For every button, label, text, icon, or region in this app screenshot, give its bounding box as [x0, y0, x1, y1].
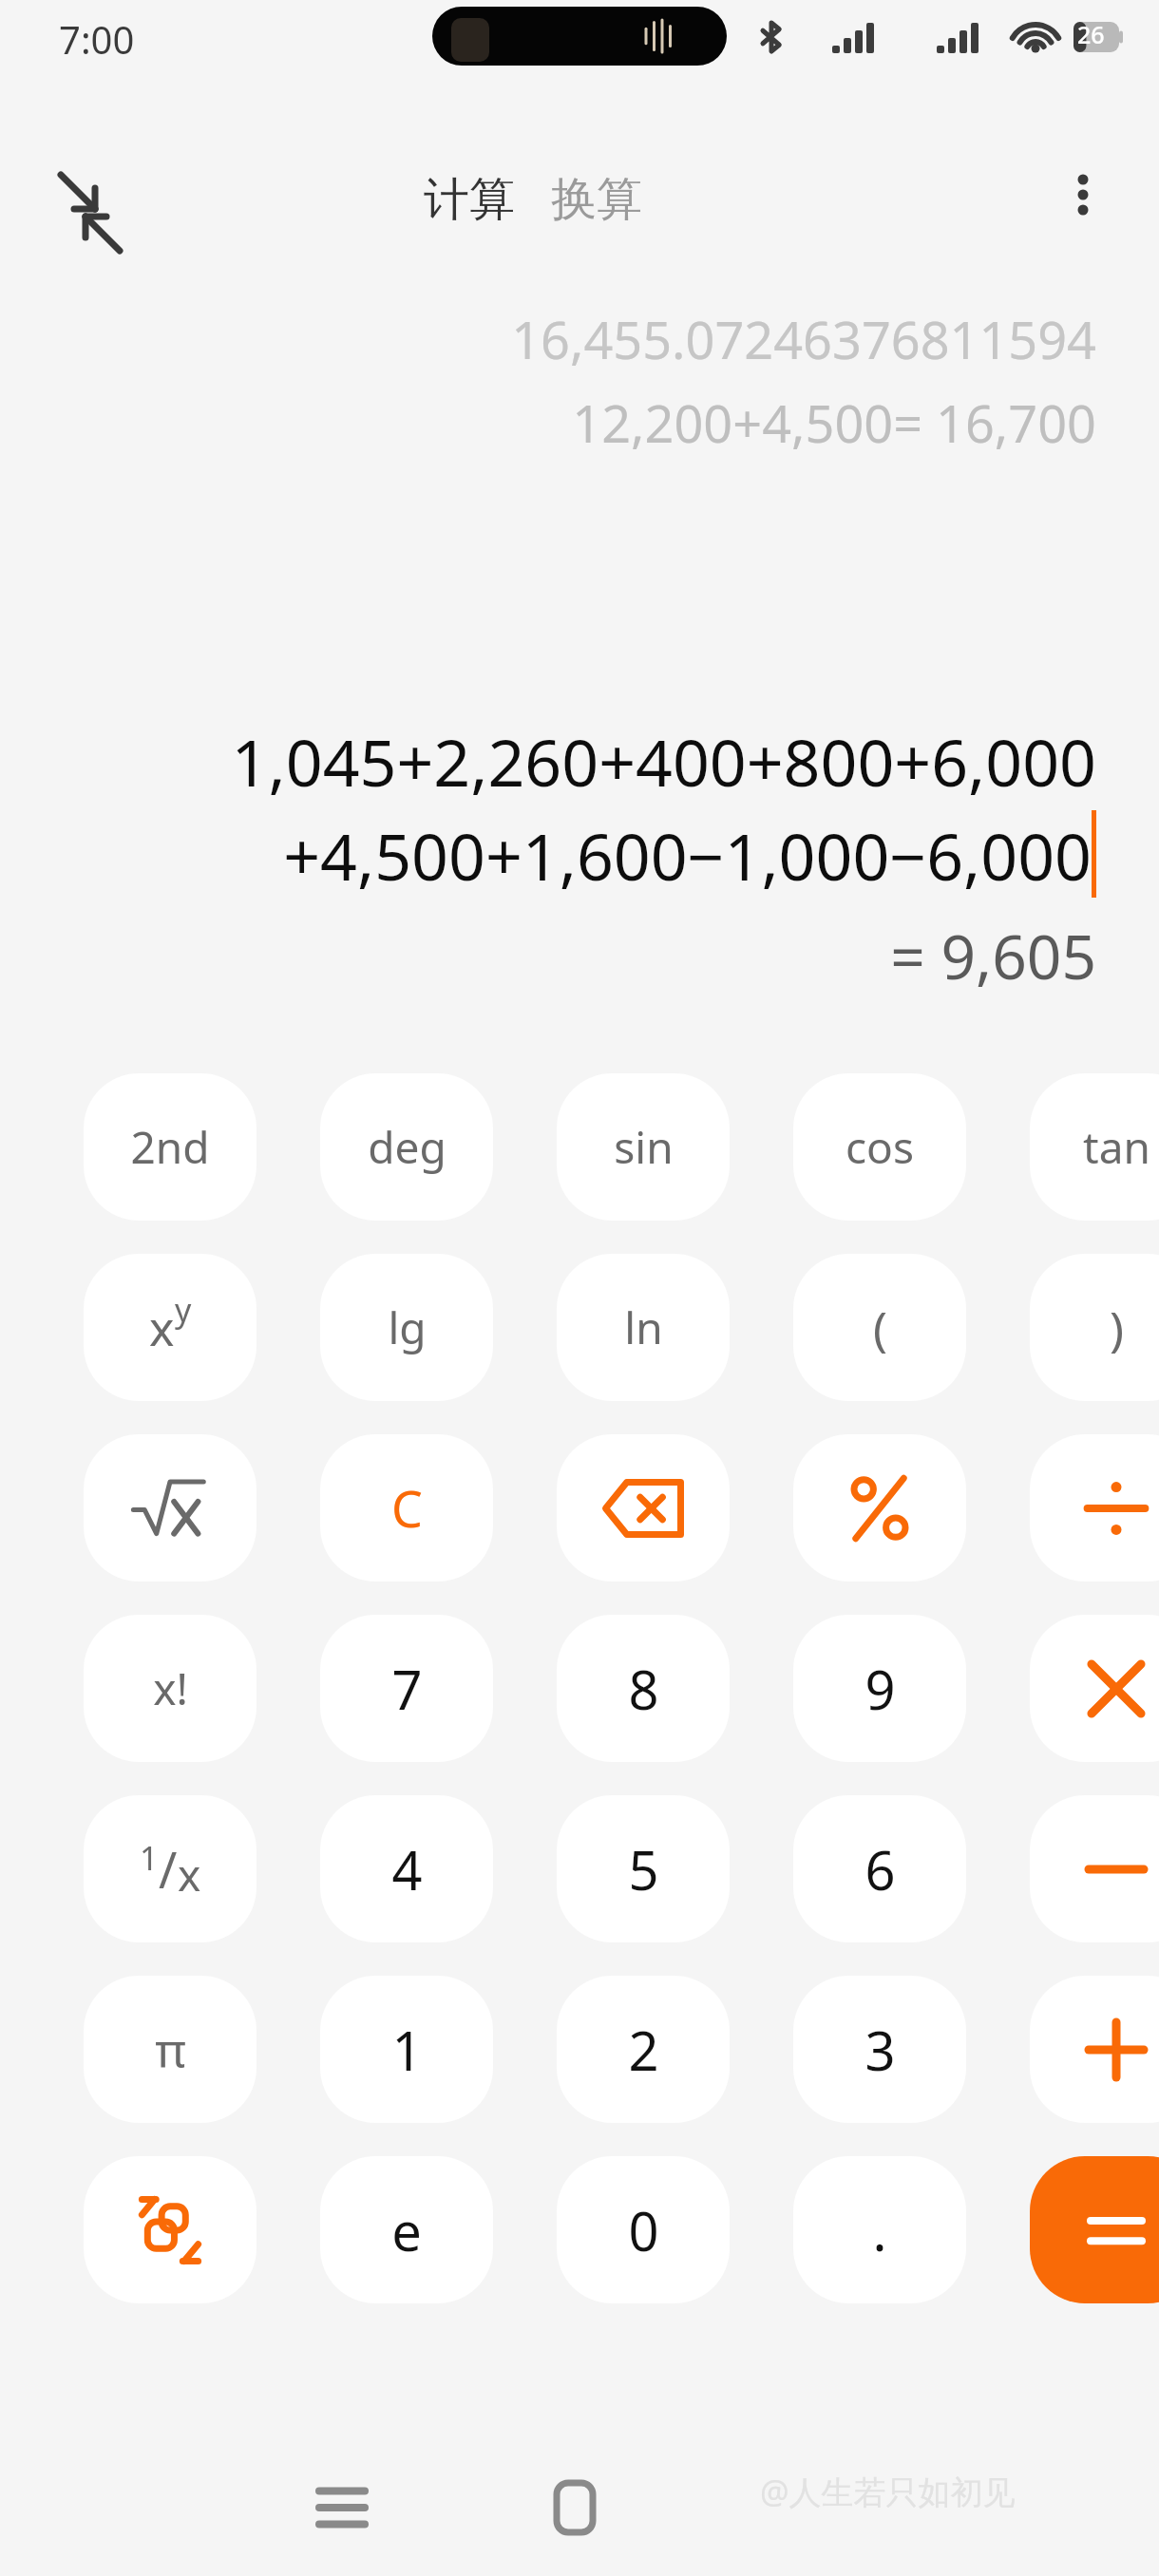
staticText: ln [624, 1297, 663, 1357]
staticText: x! [153, 1658, 188, 1718]
staticText: 16,455.07246376811594 [511, 304, 1096, 374]
staticText: 12,200+4,500= 16,700 [572, 388, 1096, 458]
button[interactable]: cos [793, 1073, 966, 1221]
staticText: x [149, 1296, 175, 1360]
button[interactable]: Home [508, 2441, 641, 2574]
staticText: 26 [1077, 18, 1105, 50]
staticText: 2nd [130, 1117, 210, 1177]
button[interactable]: lg [320, 1254, 493, 1401]
button[interactable]: ( [793, 1254, 966, 1401]
button[interactable]: 计算 [418, 171, 521, 228]
button[interactable]: 3 [793, 1976, 966, 2123]
staticText: ( [873, 1296, 887, 1360]
staticText: 0 [628, 2194, 659, 2266]
button[interactable]: More options [1045, 157, 1121, 233]
button[interactable]: deg [320, 1073, 493, 1221]
staticText: = 9,605 [890, 915, 1096, 997]
button[interactable]: 9 [793, 1615, 966, 1762]
staticText: 1 [140, 1836, 159, 1880]
button[interactable]: 0 [557, 2156, 730, 2303]
staticText: 3 [864, 2014, 896, 2086]
button[interactable]: x! [84, 1615, 256, 1762]
staticText: sin [614, 1117, 674, 1177]
staticText: @人生若只如初见 [760, 2470, 1016, 2513]
staticText: . [872, 2194, 887, 2266]
button[interactable]: sin [557, 1073, 730, 1221]
staticText: y [175, 1288, 192, 1332]
staticText: 计算 [424, 171, 515, 228]
button[interactable]: Divide [1030, 1434, 1159, 1582]
button[interactable]: C [320, 1434, 493, 1582]
staticText: / [159, 1835, 178, 1903]
staticText: 1 [391, 2014, 423, 2086]
staticText: x [178, 1845, 201, 1904]
staticText: 1,045+2,260+400+800+6,000 [231, 717, 1096, 805]
button[interactable]: Plus [1030, 1976, 1159, 2123]
button[interactable]: . [793, 2156, 966, 2303]
staticText: tan [1083, 1117, 1150, 1177]
button[interactable]: Square root [84, 1434, 256, 1582]
button[interactable]: Reciprocal [84, 1795, 256, 1942]
button[interactable]: 2nd [84, 1073, 256, 1221]
staticText: +4,500+1,600−1,000−6,000 [283, 811, 1092, 900]
staticText: 8 [628, 1653, 659, 1725]
button[interactable]: 1 [320, 1976, 493, 2123]
button[interactable]: 4 [320, 1795, 493, 1942]
staticText: 9 [864, 1653, 896, 1725]
button[interactable]: Minus [1030, 1795, 1159, 1942]
staticText: π [155, 2017, 186, 2082]
button[interactable]: 换算 [545, 171, 648, 228]
button[interactable]: e [320, 2156, 493, 2303]
staticText: deg [368, 1117, 446, 1177]
staticText: 7:00 [59, 13, 135, 65]
button[interactable]: Power [84, 1254, 256, 1401]
button[interactable]: π [84, 1976, 256, 2123]
staticText: 6 [864, 1833, 896, 1905]
staticText: 2 [628, 2014, 659, 2086]
staticText: ) [1110, 1296, 1124, 1360]
staticText: e [391, 2194, 422, 2266]
button[interactable]: Percent [793, 1434, 966, 1582]
staticText: cos [845, 1117, 914, 1177]
button[interactable]: 2 [557, 1976, 730, 2123]
button[interactable]: ln [557, 1254, 730, 1401]
button[interactable]: Collapse [28, 152, 152, 275]
button[interactable]: ) [1030, 1254, 1159, 1401]
staticText: 4 [391, 1833, 423, 1905]
staticText: lg [388, 1297, 427, 1357]
staticText: 7 [391, 1653, 423, 1725]
button[interactable]: Equals [1030, 2156, 1159, 2303]
button[interactable]: tan [1030, 1073, 1159, 1221]
button[interactable]: Multiply [1030, 1615, 1159, 1762]
button[interactable]: 7 [320, 1615, 493, 1762]
button[interactable]: Copy result [84, 2156, 256, 2303]
staticText: 换算 [551, 171, 642, 228]
button[interactable]: Recent apps [275, 2441, 408, 2574]
staticText: 5 [628, 1833, 659, 1905]
button[interactable]: 8 [557, 1615, 730, 1762]
staticText: C [391, 1474, 423, 1542]
button[interactable]: 6 [793, 1795, 966, 1942]
button[interactable]: Backspace [557, 1434, 730, 1582]
button[interactable]: 5 [557, 1795, 730, 1942]
